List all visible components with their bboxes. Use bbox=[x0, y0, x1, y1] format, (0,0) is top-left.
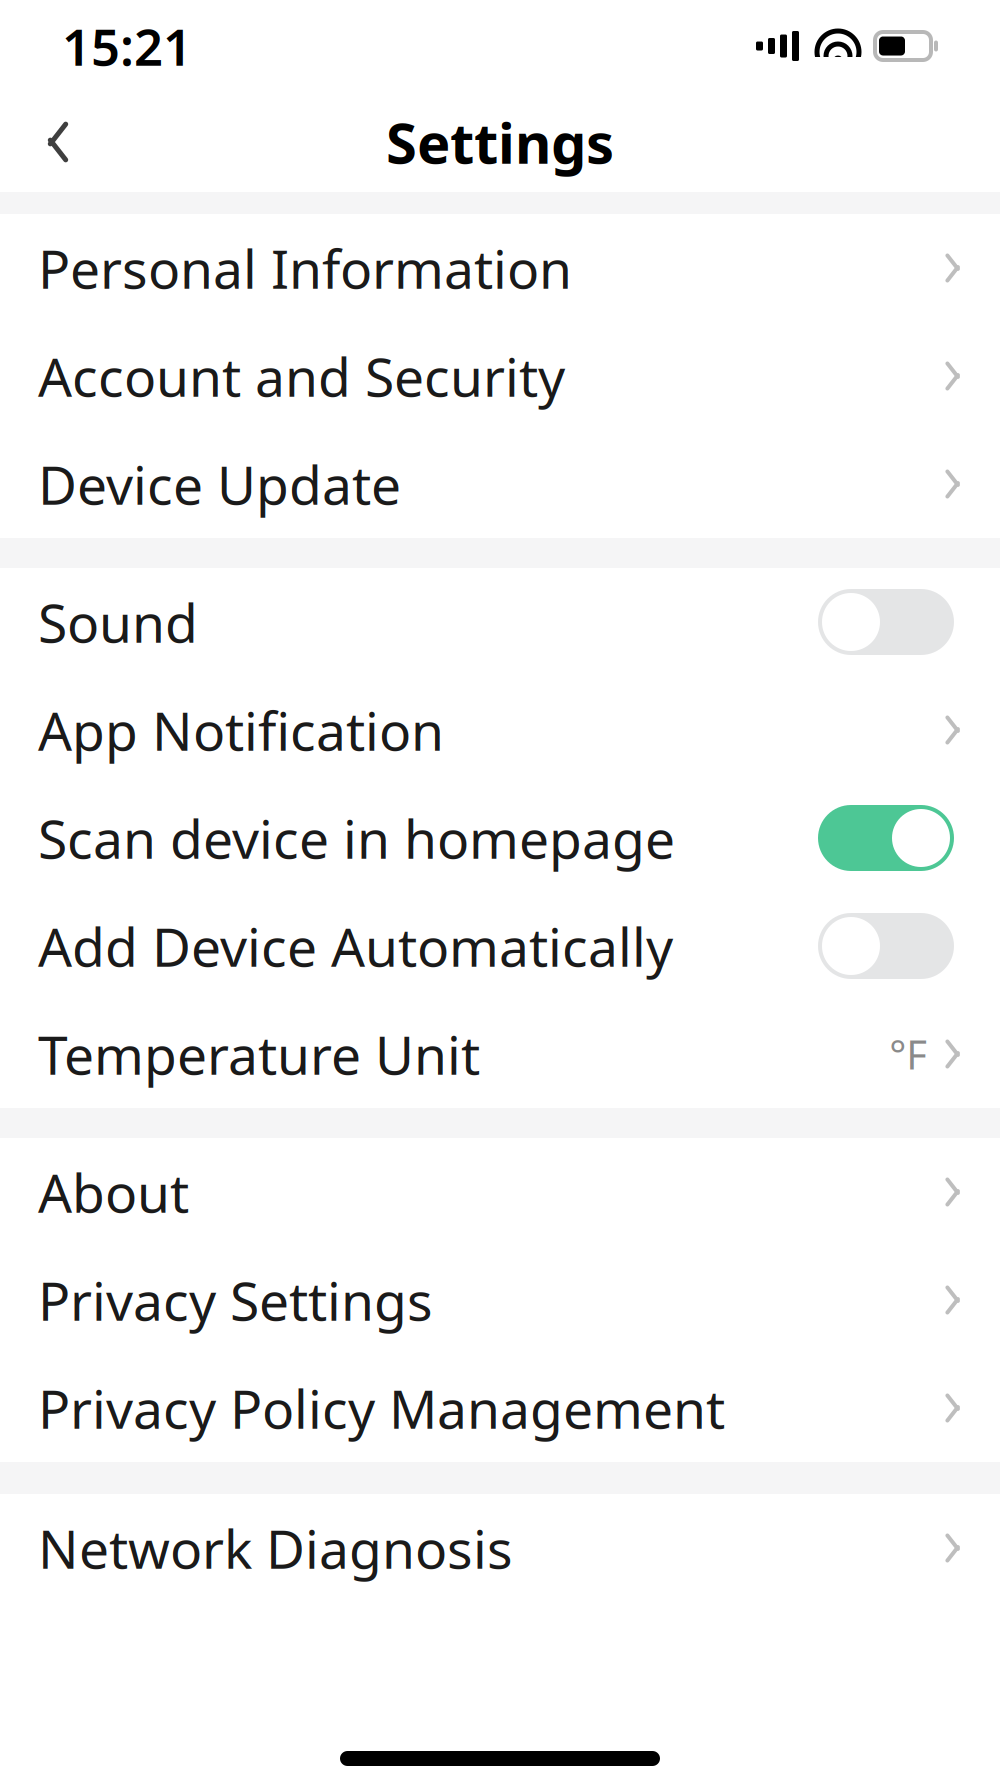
button[interactable]: Privacy Settings bbox=[0, 1246, 1000, 1354]
button[interactable]: Account and Security bbox=[0, 322, 1000, 430]
button[interactable]: Privacy Policy Management bbox=[0, 1354, 1000, 1462]
button[interactable]: Add Device Automatically bbox=[0, 892, 1000, 1000]
staticText: Settings bbox=[386, 105, 614, 179]
staticText: Temperature Unit bbox=[38, 1019, 480, 1089]
button[interactable]: Sound bbox=[0, 568, 1000, 676]
staticText: Network Diagnosis bbox=[38, 1513, 513, 1583]
staticText: Privacy Policy Management bbox=[38, 1373, 725, 1443]
button[interactable]: Device Update bbox=[0, 430, 1000, 538]
button[interactable]: App Notification bbox=[0, 676, 1000, 784]
staticText: Account and Security bbox=[38, 341, 565, 411]
button[interactable]: Back bbox=[18, 102, 98, 182]
button[interactable]: About bbox=[0, 1138, 1000, 1246]
button[interactable]: Personal Information bbox=[0, 214, 1000, 322]
staticText: Sound bbox=[38, 587, 198, 657]
staticText: Device Update bbox=[38, 449, 401, 519]
button[interactable]: Scan device in homepage bbox=[0, 784, 1000, 892]
staticText: About bbox=[38, 1157, 189, 1227]
staticText: 15:21 bbox=[62, 12, 192, 80]
staticText: Privacy Settings bbox=[38, 1265, 433, 1335]
staticText: Personal Information bbox=[38, 233, 572, 303]
button[interactable]: Network Diagnosis bbox=[0, 1494, 1000, 1602]
staticText: °F bbox=[889, 1027, 927, 1080]
staticText: Scan device in homepage bbox=[38, 803, 675, 873]
staticText: Add Device Automatically bbox=[38, 911, 673, 981]
button[interactable]: Temperature Unit bbox=[0, 1000, 1000, 1108]
staticText: App Notification bbox=[38, 695, 444, 765]
